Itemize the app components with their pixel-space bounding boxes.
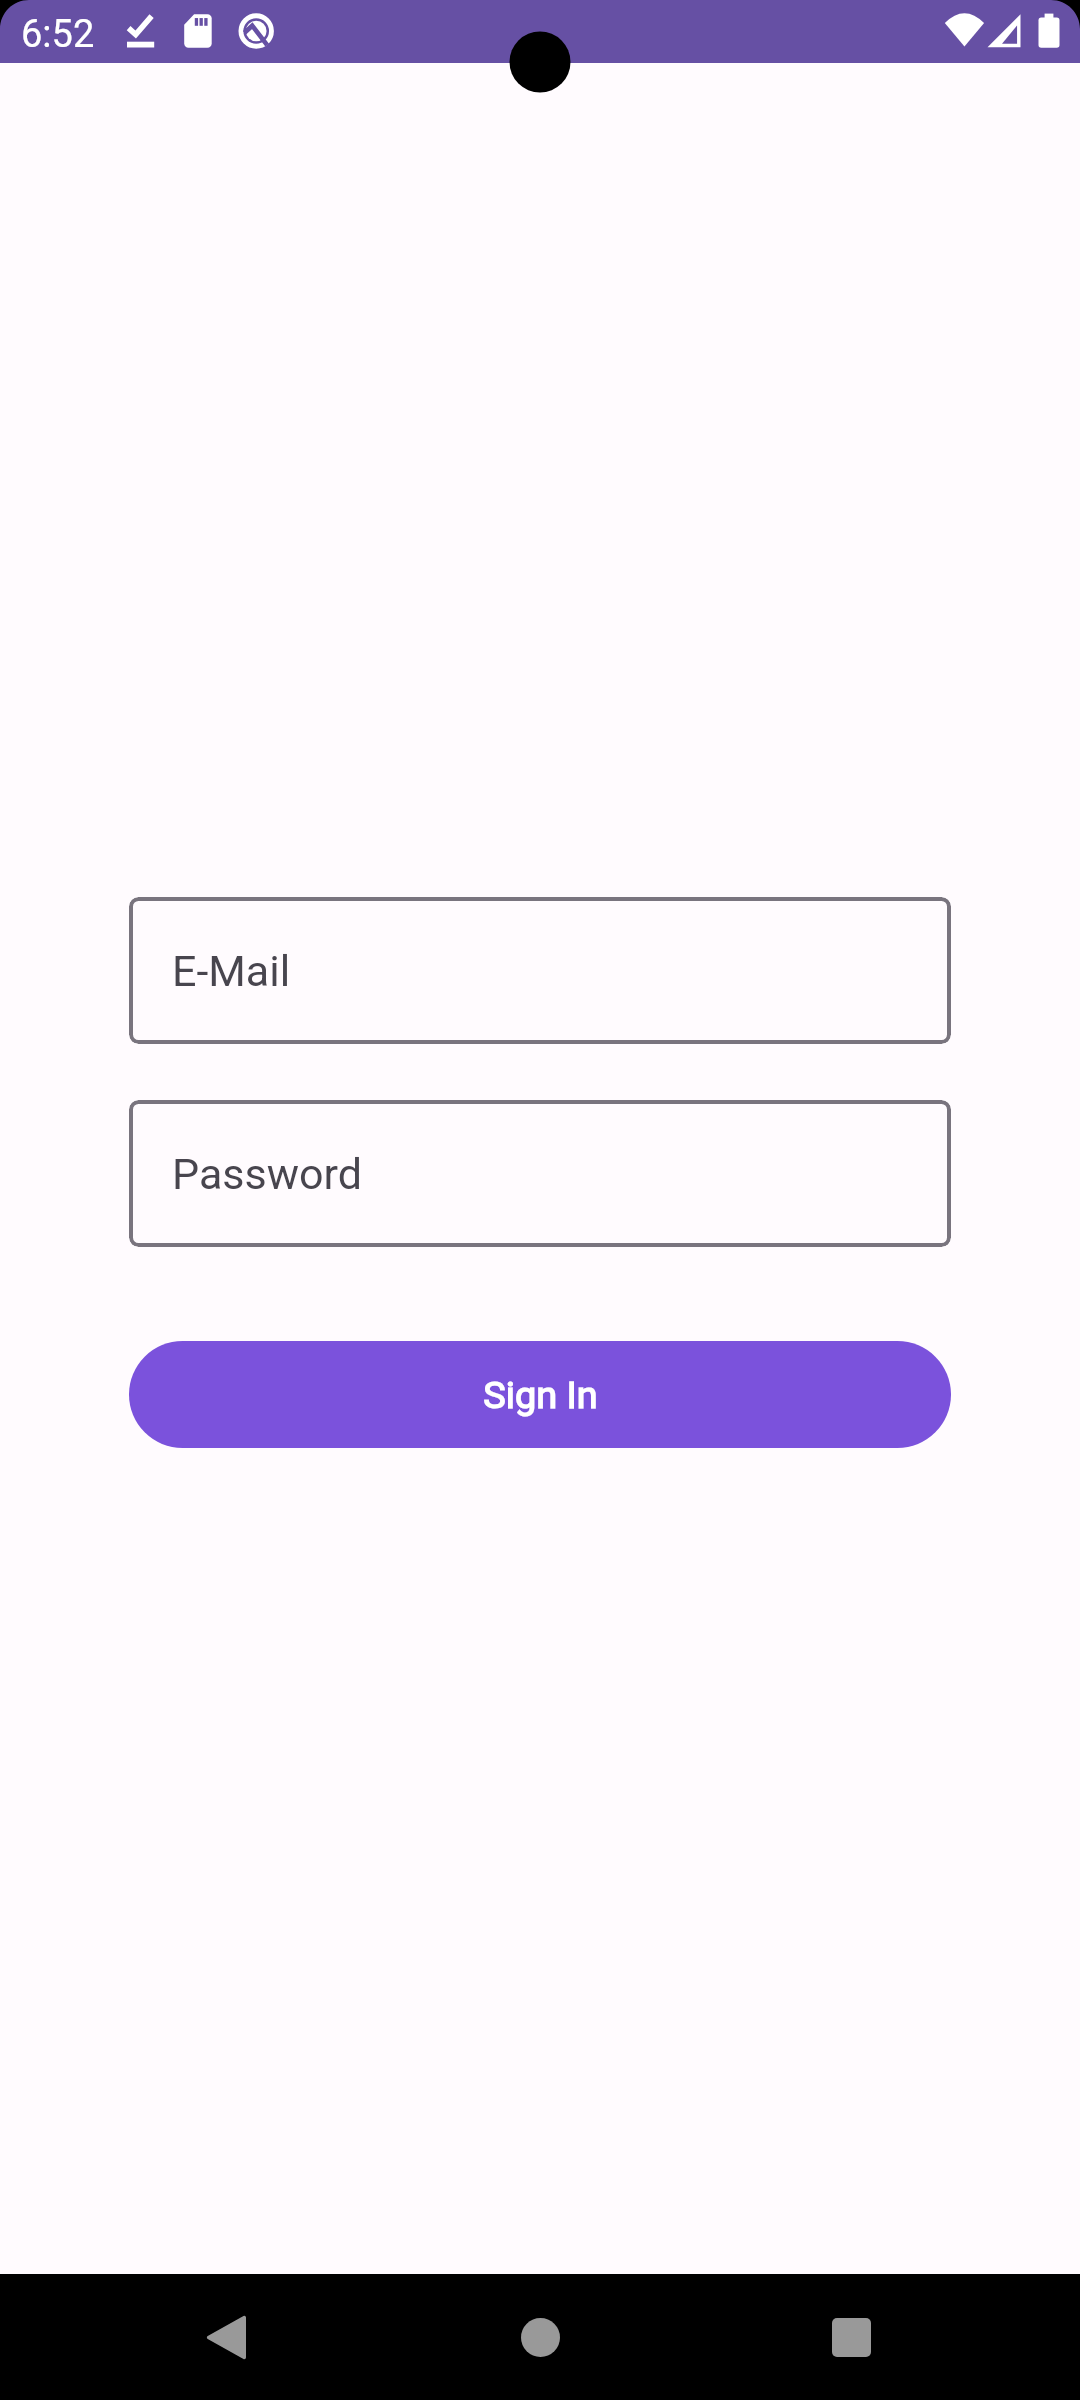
button[interactable]: Back (166, 2277, 286, 2397)
staticText: 6:52 (21, 12, 95, 57)
button[interactable]: Recents (791, 2277, 911, 2397)
button[interactable]: E-Mail (129, 897, 951, 1044)
button[interactable]: Sign In (129, 1341, 951, 1448)
button[interactable]: Home (480, 2277, 600, 2397)
button[interactable]: Password (129, 1100, 951, 1247)
staticText: Password (172, 1149, 362, 1199)
staticText: E-Mail (172, 946, 291, 996)
staticText: Sign In (483, 1373, 598, 1417)
